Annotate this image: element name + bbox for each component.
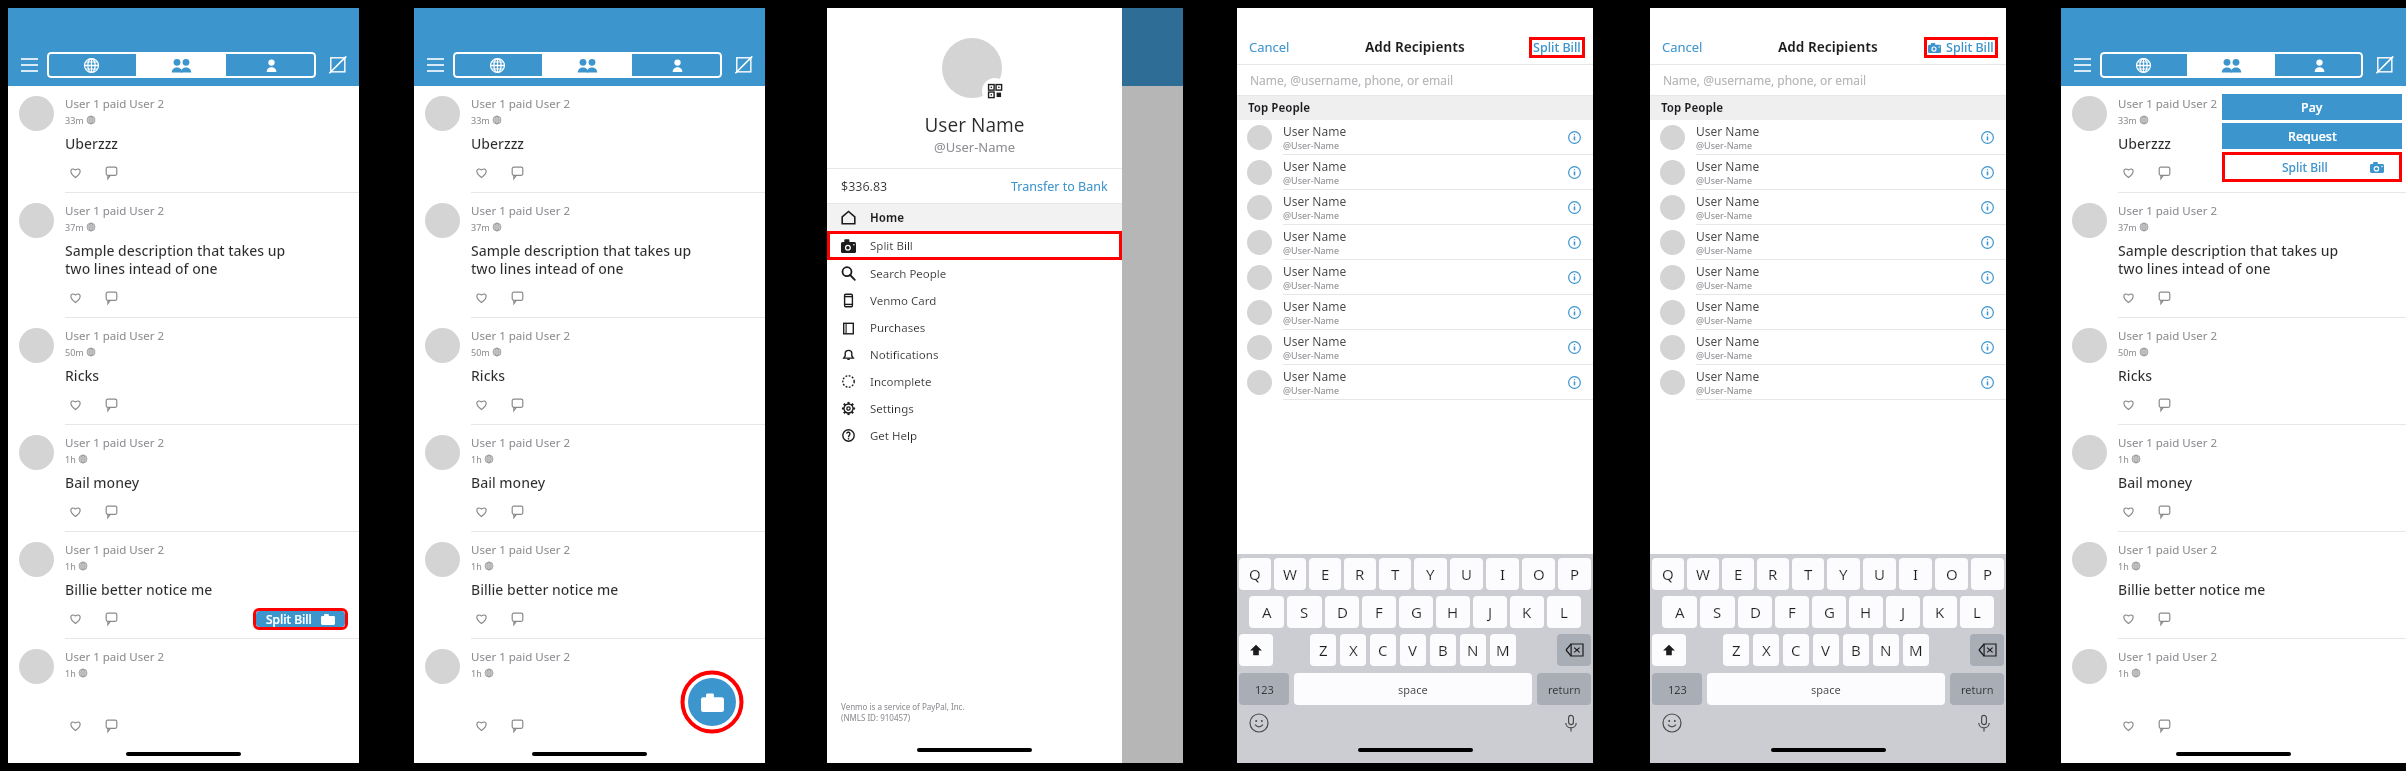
button[interactable]: User Name xyxy=(1660,330,1996,364)
button[interactable]: Split Bill xyxy=(266,611,335,627)
button[interactable]: L xyxy=(1547,596,1581,628)
button[interactable]: D xyxy=(1738,596,1772,628)
button[interactable]: Like xyxy=(2118,162,2138,182)
button[interactable]: R xyxy=(1344,558,1376,590)
button[interactable]: Comment xyxy=(2154,394,2174,414)
button[interactable]: Like xyxy=(65,162,85,182)
button[interactable]: M xyxy=(1490,634,1516,666)
button[interactable]: G xyxy=(1399,596,1433,628)
button[interactable]: Like xyxy=(2118,501,2138,521)
button[interactable]: Comment xyxy=(2154,162,2174,182)
button[interactable]: Public feed xyxy=(453,52,542,78)
button[interactable]: Menu xyxy=(17,53,41,77)
button[interactable]: Like xyxy=(471,162,491,182)
button[interactable]: space xyxy=(1707,673,1945,705)
button[interactable]: Info xyxy=(1565,128,1583,146)
button[interactable]: R xyxy=(1757,558,1789,590)
button[interactable]: E xyxy=(1309,558,1341,590)
button[interactable]: Home xyxy=(841,204,1108,231)
button[interactable]: S xyxy=(1700,596,1735,628)
button[interactable]: User Name xyxy=(1247,190,1583,224)
button[interactable]: K xyxy=(1923,596,1957,628)
button[interactable]: Q xyxy=(1239,558,1271,590)
button[interactable]: Comment xyxy=(101,715,121,735)
button[interactable]: Friends feed xyxy=(2187,52,2275,78)
button[interactable]: Like xyxy=(2118,608,2138,628)
button[interactable]: U xyxy=(1450,558,1483,590)
button[interactable]: Shift xyxy=(1239,634,1273,666)
button[interactable]: Info xyxy=(1565,303,1583,321)
button[interactable]: Dictation xyxy=(1561,713,1581,733)
button[interactable]: Menu xyxy=(2070,53,2094,77)
button[interactable]: T xyxy=(1792,558,1824,590)
button[interactable]: Q xyxy=(1652,558,1684,590)
button[interactable]: Like xyxy=(65,608,85,628)
button[interactable]: Info xyxy=(1978,268,1996,286)
button[interactable]: Mine feed xyxy=(226,52,316,78)
button[interactable]: Mine feed xyxy=(632,52,722,78)
button[interactable]: Like xyxy=(65,715,85,735)
button[interactable]: Info xyxy=(1978,233,1996,251)
button[interactable]: User Name xyxy=(1660,190,1996,224)
button[interactable]: Comment xyxy=(2154,287,2174,307)
button[interactable]: Split Bill xyxy=(841,232,1108,259)
button[interactable]: Like xyxy=(2118,287,2138,307)
button[interactable]: J xyxy=(1473,596,1507,628)
button[interactable]: User Name xyxy=(1247,365,1583,399)
button[interactable]: Comment xyxy=(507,715,527,735)
button[interactable]: Mine feed xyxy=(2275,52,2363,78)
button[interactable]: 123 xyxy=(1239,673,1289,705)
button[interactable]: Z xyxy=(1310,634,1336,666)
button[interactable]: Comment xyxy=(507,394,527,414)
button[interactable]: Comment xyxy=(507,608,527,628)
button[interactable]: Info xyxy=(1978,373,1996,391)
button[interactable]: Incomplete xyxy=(841,368,1108,395)
button[interactable]: F xyxy=(1362,596,1396,628)
button[interactable]: K xyxy=(1510,596,1544,628)
button[interactable]: Comment xyxy=(101,501,121,521)
button[interactable]: Emoji xyxy=(1662,713,1682,733)
button[interactable]: Like xyxy=(471,394,491,414)
button[interactable]: User Name xyxy=(1247,260,1583,294)
button[interactable]: Dictation xyxy=(1974,713,1994,733)
button[interactable]: Settings xyxy=(841,395,1108,422)
button[interactable]: Comment xyxy=(507,287,527,307)
button[interactable]: O xyxy=(1935,558,1968,590)
button[interactable]: Y xyxy=(1414,558,1447,590)
button[interactable]: O xyxy=(1522,558,1555,590)
button[interactable]: A xyxy=(1662,596,1697,628)
button[interactable]: C xyxy=(1783,634,1809,666)
button[interactable]: Comment xyxy=(101,287,121,307)
button[interactable]: D xyxy=(1325,596,1359,628)
button[interactable]: Like xyxy=(471,715,491,735)
button[interactable]: Comment xyxy=(101,608,121,628)
button[interactable]: J xyxy=(1886,596,1920,628)
button[interactable]: E xyxy=(1722,558,1754,590)
button[interactable]: User Name xyxy=(1660,120,1996,154)
button[interactable]: Cancel xyxy=(1249,38,1290,56)
button[interactable]: User Name xyxy=(1660,295,1996,329)
button[interactable]: Split Bill xyxy=(1928,39,1994,56)
button[interactable]: 123 xyxy=(1652,673,1702,705)
button[interactable]: Backspace xyxy=(1557,634,1591,666)
button[interactable]: Info xyxy=(1565,198,1583,216)
button[interactable]: User Name xyxy=(1247,155,1583,189)
button[interactable]: User Name xyxy=(1660,225,1996,259)
button[interactable]: T xyxy=(1379,558,1411,590)
button[interactable]: L xyxy=(1960,596,1994,628)
button[interactable]: N xyxy=(1460,634,1486,666)
button[interactable]: Friends feed xyxy=(542,52,632,78)
button[interactable]: Info xyxy=(1565,338,1583,356)
button[interactable]: Like xyxy=(471,501,491,521)
button[interactable]: M xyxy=(1903,634,1929,666)
button[interactable]: User Name xyxy=(1660,365,1996,399)
button[interactable]: Public feed xyxy=(47,52,136,78)
button[interactable]: S xyxy=(1287,596,1322,628)
button[interactable]: Split Bill xyxy=(1533,39,1581,56)
button[interactable]: User Name xyxy=(1247,295,1583,329)
button[interactable]: Split Bill xyxy=(2224,154,2400,180)
button[interactable]: QR code xyxy=(982,78,1008,104)
button[interactable]: G xyxy=(1812,596,1846,628)
button[interactable]: User Name xyxy=(1247,120,1583,154)
button[interactable]: Comment xyxy=(101,394,121,414)
